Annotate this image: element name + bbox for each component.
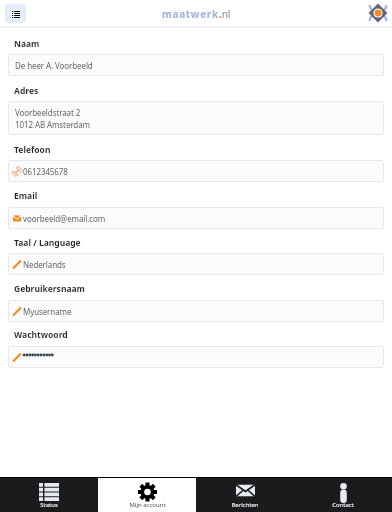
- staticText: 0612345678: [23, 166, 68, 177]
- button[interactable]: Status: [0, 478, 98, 512]
- staticText: Status: [40, 501, 58, 509]
- staticText: Berichten: [231, 501, 259, 509]
- staticText: 1012 AB Amsterdam: [15, 119, 90, 130]
- staticText: Email: [14, 190, 38, 202]
- button[interactable]: [8, 346, 384, 368]
- button[interactable]: Nederlands: [8, 253, 384, 275]
- staticText: Mijn account: [129, 501, 166, 509]
- staticText: Wachtwoord: [14, 329, 68, 341]
- staticText: De heer A. Voorbeeld: [15, 60, 93, 71]
- button[interactable]: voorbeeld@email.com: [8, 207, 384, 229]
- button[interactable]: 0612345678: [8, 160, 384, 182]
- button[interactable]: Contact: [294, 478, 392, 512]
- button[interactable]: Mijn account: [98, 478, 196, 512]
- staticText: Nederlands: [23, 259, 66, 270]
- staticText: Myusername: [23, 306, 72, 317]
- staticText: Naam: [14, 38, 40, 50]
- staticText: Contact: [332, 501, 354, 509]
- staticText: Telefoon: [14, 144, 51, 156]
- staticText: Gebruikersnaam: [14, 283, 85, 295]
- staticText: voorbeeld@email.com: [23, 213, 106, 224]
- staticText: Voorbeeldstraat 2: [15, 107, 81, 118]
- staticText: maatwerk.nl: [162, 7, 231, 21]
- staticText: Adres: [14, 85, 39, 97]
- button[interactable]: Berichten: [196, 478, 294, 512]
- staticText: Taal / Language: [14, 237, 81, 249]
- button[interactable]: Myusername: [8, 300, 384, 322]
- button[interactable]: App logo: [368, 3, 388, 23]
- button[interactable]: Voorbeeldstraat 2: [8, 101, 384, 135]
- button[interactable]: De heer A. Voorbeeld: [8, 54, 384, 76]
- button[interactable]: Menu: [5, 4, 26, 23]
